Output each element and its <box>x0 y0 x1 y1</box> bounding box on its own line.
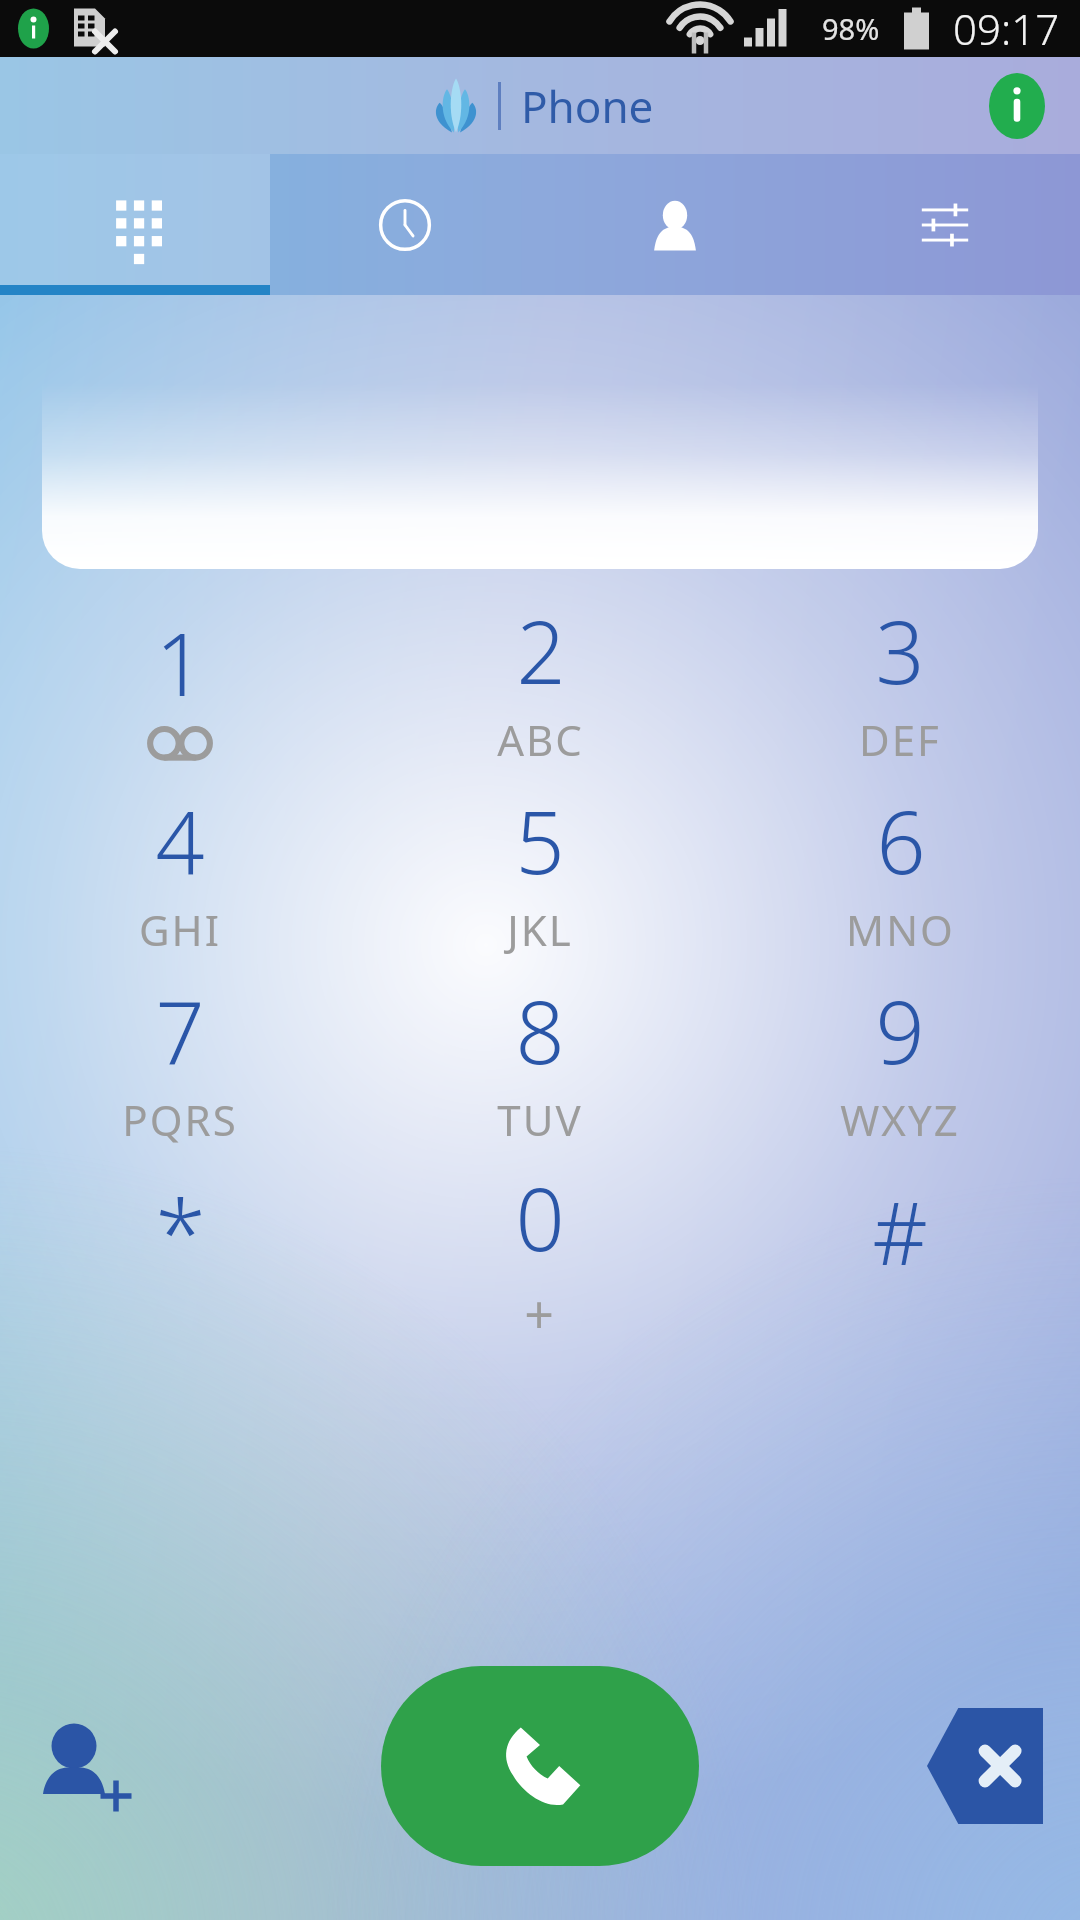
button[interactable]: 1 <box>0 589 360 779</box>
staticText: PQRS <box>122 1091 238 1148</box>
button[interactable]: Phone number <box>42 383 1038 569</box>
staticText: 98% <box>822 9 880 48</box>
button[interactable]: 4 <box>0 779 360 969</box>
button[interactable]: Call <box>381 1666 699 1866</box>
staticText: 4 <box>155 782 205 899</box>
button[interactable]: 5 <box>360 779 720 969</box>
staticText: 9 <box>875 972 925 1089</box>
staticText: 7 <box>155 972 205 1089</box>
staticText: GHI <box>139 901 221 958</box>
staticText: 0 <box>515 1159 565 1276</box>
staticText: DEF <box>859 711 941 768</box>
staticText: 6 <box>876 782 926 899</box>
staticText: 3 <box>875 592 925 709</box>
staticText: WXYZ <box>840 1091 960 1148</box>
button[interactable]: Call logs <box>270 154 540 295</box>
staticText: TUV <box>497 1091 583 1148</box>
button[interactable]: Backspace <box>910 1691 1060 1841</box>
button[interactable]: 6 <box>720 779 1080 969</box>
staticText: JKL <box>507 901 573 958</box>
button[interactable]: Keypad <box>0 154 270 295</box>
staticText: Phone <box>521 76 654 136</box>
button[interactable]: 0 <box>360 1159 720 1349</box>
button[interactable]: 3 <box>720 589 1080 779</box>
staticText: 8 <box>515 972 565 1089</box>
staticText: # <box>872 1173 928 1290</box>
button[interactable]: Contacts <box>540 154 810 295</box>
button[interactable]: 9 <box>720 969 1080 1159</box>
staticText: 5 <box>515 782 565 899</box>
staticText: ABC <box>497 711 584 768</box>
staticText: * <box>155 1169 206 1294</box>
button[interactable]: 2 <box>360 589 720 779</box>
button[interactable]: # <box>720 1159 1080 1349</box>
button[interactable]: Settings <box>810 154 1080 295</box>
button[interactable]: * <box>0 1159 360 1349</box>
button[interactable]: 7 <box>0 969 360 1159</box>
staticText: + <box>524 1278 556 1349</box>
staticText: 1 <box>155 604 205 721</box>
button[interactable]: Add contact <box>12 1691 162 1841</box>
staticText: MNO <box>846 901 955 958</box>
button[interactable]: 8 <box>360 969 720 1159</box>
staticText: 2 <box>516 592 566 709</box>
button[interactable]: Info <box>984 73 1050 139</box>
staticText: 09:17 <box>953 0 1060 57</box>
